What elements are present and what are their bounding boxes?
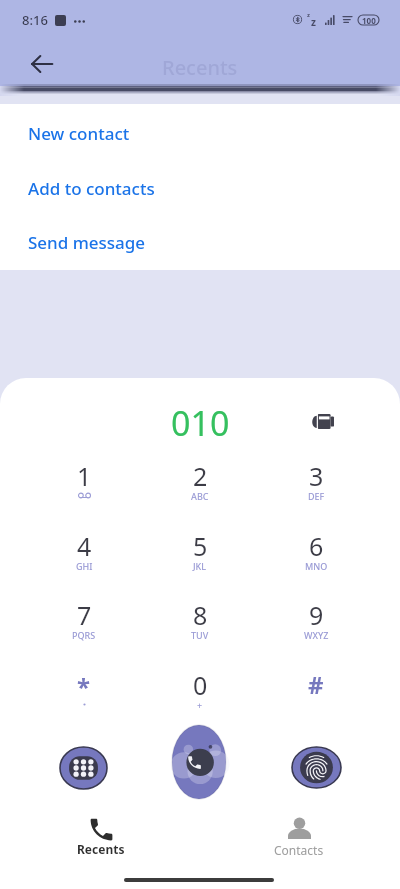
button[interactable]: 9 [264,584,368,650]
staticText: Contacts [274,842,324,858]
button[interactable]: Video call [299,398,345,444]
staticText: Recents [162,54,238,81]
staticText: MNO [305,560,328,572]
button[interactable]: 3 [264,445,368,511]
button[interactable]: Add to contacts [0,162,400,214]
staticText: # [308,668,324,701]
staticText: * [77,670,91,703]
button[interactable]: 8 [148,584,252,650]
button[interactable]: 7 [32,584,136,650]
button[interactable]: 1 [32,445,136,511]
button[interactable]: 2 [148,445,252,511]
staticText: 8:16 [22,11,48,29]
button[interactable]: New contact [0,107,400,159]
staticText: DEF [308,490,325,502]
staticText: 8 [193,598,208,632]
staticText: TUV [191,629,209,641]
staticText: + [197,699,203,711]
staticText: 1 [77,459,92,493]
button[interactable]: Call [171,724,227,800]
staticText: 100 [362,15,376,25]
staticText: PQRS [72,629,96,641]
staticText: ABC [191,490,209,502]
staticText: Recents [77,841,125,857]
staticText: Send message [28,231,146,254]
staticText: z [311,15,316,29]
button[interactable]: Back [20,42,64,86]
staticText: 2 [193,459,208,493]
button[interactable]: Fingerprint unlock [290,745,343,790]
staticText: z [307,11,310,19]
staticText: GHI [76,560,93,572]
staticText: WXYZ [304,629,329,641]
button[interactable]: Hide keypad [58,745,109,791]
staticText: 3 [309,459,324,493]
staticText: 6 [309,529,324,563]
button[interactable]: Contacts [249,808,349,860]
button[interactable]: # [264,654,368,720]
staticText: Add to contacts [28,177,155,200]
button[interactable]: 4 [32,515,136,581]
button[interactable]: 5 [148,515,252,581]
staticText: 7 [77,598,92,632]
staticText: 0 [193,668,208,702]
staticText: JKL [193,560,207,572]
button[interactable]: Recents [51,808,151,860]
button[interactable]: 6 [264,515,368,581]
staticText: 010 [171,400,230,446]
staticText: 9 [309,598,324,632]
button[interactable]: 0 [148,654,252,720]
staticText: 5 [193,529,208,563]
button[interactable]: Send message [0,216,400,268]
staticText: 4 [77,529,92,563]
staticText: New contact [28,122,130,145]
button[interactable]: * [32,654,136,720]
